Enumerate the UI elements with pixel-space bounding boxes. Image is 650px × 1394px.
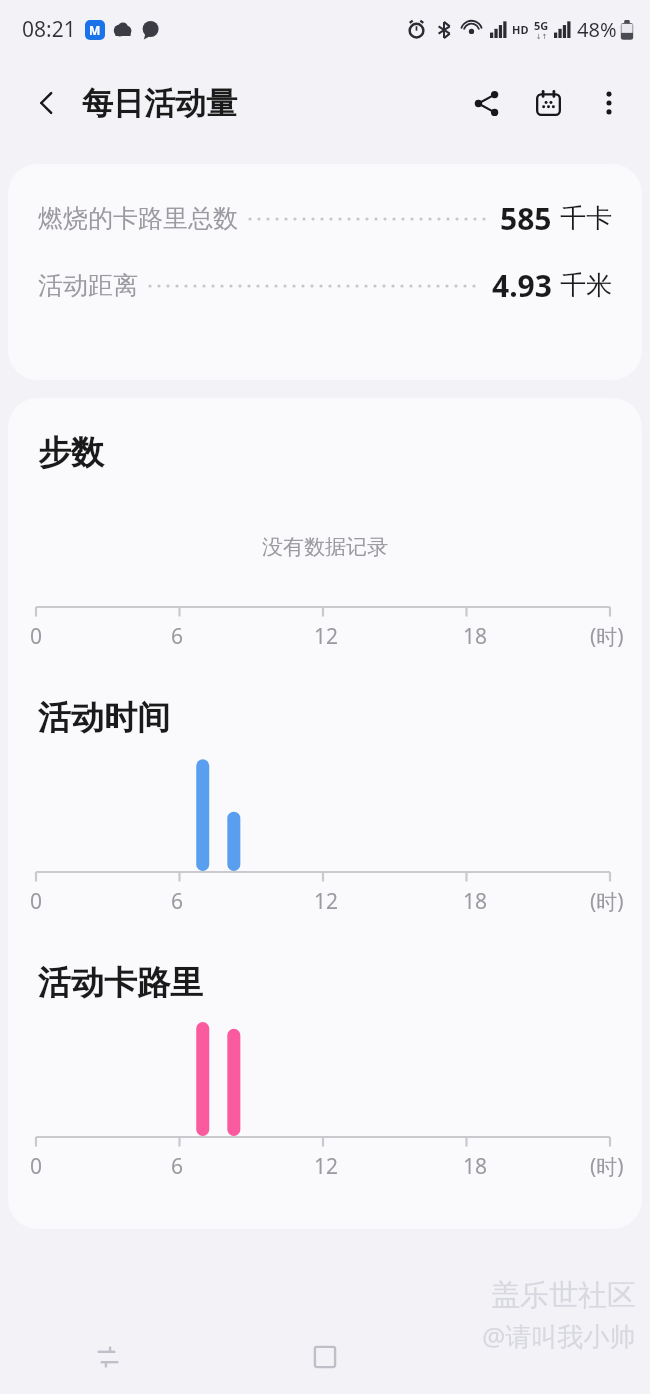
staticText: ↓↑ [536, 33, 548, 41]
button[interactable]: 燃烧的卡路里总数 [8, 164, 642, 380]
staticText: 6 [171, 622, 184, 651]
staticText: 每日活动量 [82, 84, 237, 123]
staticText: 6 [171, 1152, 184, 1181]
button[interactable]: Share [462, 79, 510, 127]
staticText: HD [512, 22, 529, 37]
staticText: 活动卡路里 [38, 962, 203, 1004]
staticText: 千卡 [560, 202, 612, 235]
staticText: 盖乐世社区 [491, 1277, 636, 1314]
staticText: (时) [590, 887, 624, 916]
staticText: 585 [500, 198, 552, 239]
staticText: 0 [30, 1152, 43, 1181]
staticText: 18 [463, 887, 488, 916]
staticText: (时) [590, 1152, 624, 1181]
button[interactable]: 活动卡路里 [8, 962, 642, 1181]
button[interactable]: 活动时间 [8, 697, 642, 916]
button[interactable]: Home [216, 1320, 433, 1394]
staticText: 08:21 [22, 15, 76, 44]
staticText: 0 [30, 887, 43, 916]
staticText: 活动时间 [38, 697, 170, 739]
staticText: 步数 [38, 432, 104, 474]
button[interactable]: 步数 [8, 432, 642, 651]
staticText: 活动距离 [38, 270, 138, 301]
staticText: 没有数据记录 [262, 534, 388, 560]
button[interactable]: Back [433, 1320, 650, 1394]
staticText: 6 [171, 887, 184, 916]
staticText: M [89, 22, 101, 38]
staticText: @请叫我小帅 [482, 1318, 636, 1354]
button[interactable]: Back [28, 84, 66, 122]
staticText: 18 [463, 1152, 488, 1181]
button[interactable]: Calendar [524, 79, 572, 127]
staticText: 12 [314, 1152, 339, 1181]
staticText: 12 [314, 622, 339, 651]
button[interactable]: Recents [0, 1320, 216, 1394]
staticText: 燃烧的卡路里总数 [38, 203, 238, 234]
staticText: (时) [590, 622, 624, 651]
button[interactable]: More options [586, 80, 632, 126]
staticText: 0 [30, 622, 43, 651]
staticText: 18 [463, 622, 488, 651]
staticText: 12 [314, 887, 339, 916]
staticText: 5G [534, 18, 549, 33]
staticText: 48% [577, 16, 617, 43]
staticText: 千米 [560, 269, 612, 302]
staticText: 4.93 [492, 265, 552, 306]
